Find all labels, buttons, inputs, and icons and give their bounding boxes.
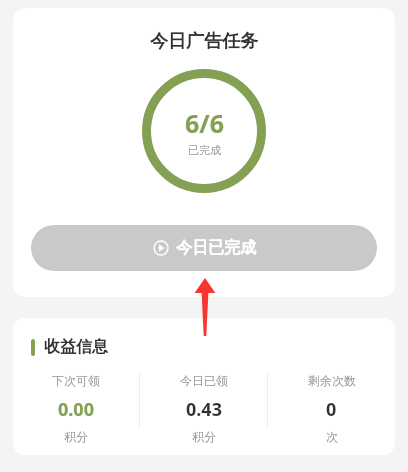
staticText: 下次可领 <box>52 373 100 388</box>
staticText: 收益信息 <box>44 337 108 357</box>
staticText: 积分 <box>192 429 216 444</box>
button[interactable]: 下次可领 <box>13 373 139 451</box>
staticText: 今日已完成 <box>176 238 256 258</box>
staticText: 积分 <box>64 429 88 444</box>
button[interactable]: 今日已领 <box>140 373 267 451</box>
staticText: 0 <box>326 397 337 422</box>
staticText: 6/6 <box>185 106 224 140</box>
staticText: 次 <box>326 429 338 444</box>
staticText: 0.00 <box>58 397 94 422</box>
staticText: 今日已领 <box>180 373 228 388</box>
button[interactable]: 剩余次数 <box>268 373 395 451</box>
staticText: 剩余次数 <box>308 373 356 388</box>
staticText: 已完成 <box>188 143 221 157</box>
staticText: 0.43 <box>186 397 222 422</box>
staticText: 今日广告任务 <box>150 30 258 53</box>
button[interactable]: 今日已完成 <box>31 225 377 271</box>
